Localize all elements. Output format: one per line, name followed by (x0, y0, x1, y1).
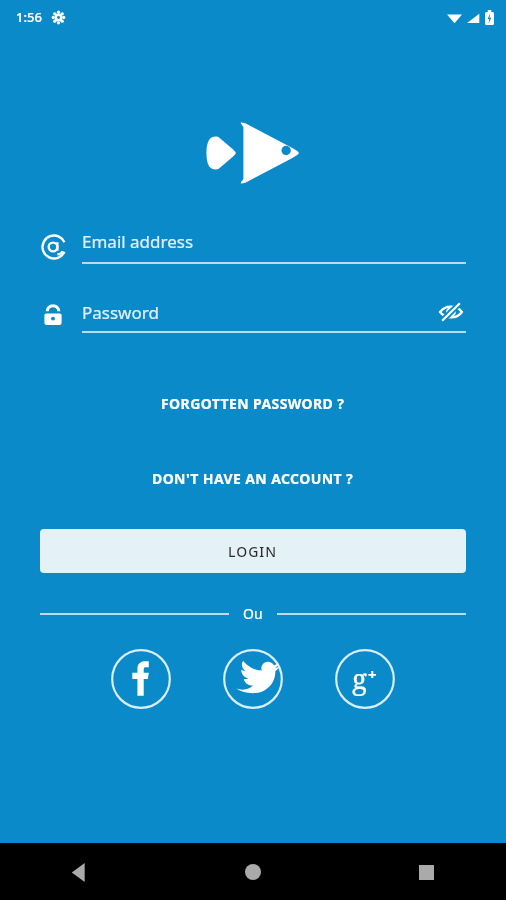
button[interactable]: Password (40, 292, 466, 338)
button[interactable]: Back (56, 848, 104, 896)
staticText: 1:56 (16, 8, 42, 26)
button[interactable]: DON'T HAVE AN ACCOUNT ? (140, 465, 366, 492)
other: Password (40, 302, 66, 328)
staticText: g (352, 659, 368, 697)
button[interactable]: FORGOTTEN PASSWORD ? (149, 390, 357, 417)
button[interactable]: Twitter (223, 649, 283, 709)
staticText: Email address (82, 230, 194, 253)
staticText: LOGIN (228, 542, 278, 561)
button[interactable]: Home (229, 848, 277, 896)
button[interactable]: Show password (436, 297, 466, 327)
button[interactable]: Google Plus (335, 649, 395, 709)
button[interactable]: LOGIN (40, 529, 466, 573)
staticText: FORGOTTEN PASSWORD ? (161, 394, 345, 413)
button[interactable]: Recent apps (402, 848, 450, 896)
other: Email (40, 233, 68, 261)
staticText: DON'T HAVE AN ACCOUNT ? (152, 469, 354, 488)
button[interactable]: Email (40, 224, 466, 270)
staticText: Ou (243, 604, 263, 623)
button[interactable]: Facebook (111, 649, 171, 709)
staticText: + (368, 664, 377, 684)
staticText: Password (82, 301, 436, 324)
